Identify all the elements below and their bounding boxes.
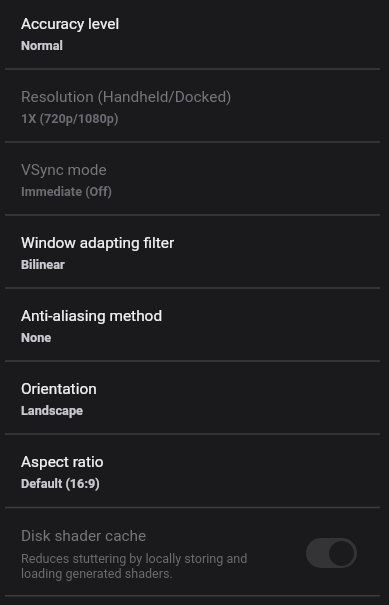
staticText: Resolution (Handheld/Docked) <box>21 88 232 106</box>
staticText: Default (16:9) <box>21 476 100 491</box>
other: Disk shader cache toggle <box>306 538 357 568</box>
staticText: Orientation <box>21 380 97 398</box>
button[interactable]: Resolution (Handheld/Docked) <box>0 69 389 142</box>
button[interactable]: Window adapting filter <box>0 215 389 288</box>
button[interactable]: Disk shader cache <box>0 508 389 596</box>
staticText: Aspect ratio <box>21 453 104 471</box>
button[interactable]: VSync mode <box>0 142 389 215</box>
button[interactable]: Orientation <box>0 361 389 434</box>
staticText: Disk shader cache <box>21 527 147 545</box>
staticText: Bilinear <box>21 257 65 272</box>
staticText: Landscape <box>21 403 83 418</box>
staticText: Window adapting filter <box>21 234 175 252</box>
staticText: Reduces stuttering by locally storing an… <box>21 551 248 581</box>
button[interactable]: Anti-aliasing method <box>0 288 389 361</box>
staticText: Normal <box>21 38 63 53</box>
button[interactable]: Aspect ratio <box>0 434 389 508</box>
button[interactable]: Accuracy level <box>0 0 389 69</box>
staticText: 1X (720p/1080p) <box>21 111 119 126</box>
staticText: None <box>21 330 52 345</box>
staticText: Immediate (Off) <box>21 184 113 199</box>
staticText: Anti-aliasing method <box>21 307 163 325</box>
staticText: VSync mode <box>21 161 107 179</box>
staticText: Accuracy level <box>21 15 120 33</box>
